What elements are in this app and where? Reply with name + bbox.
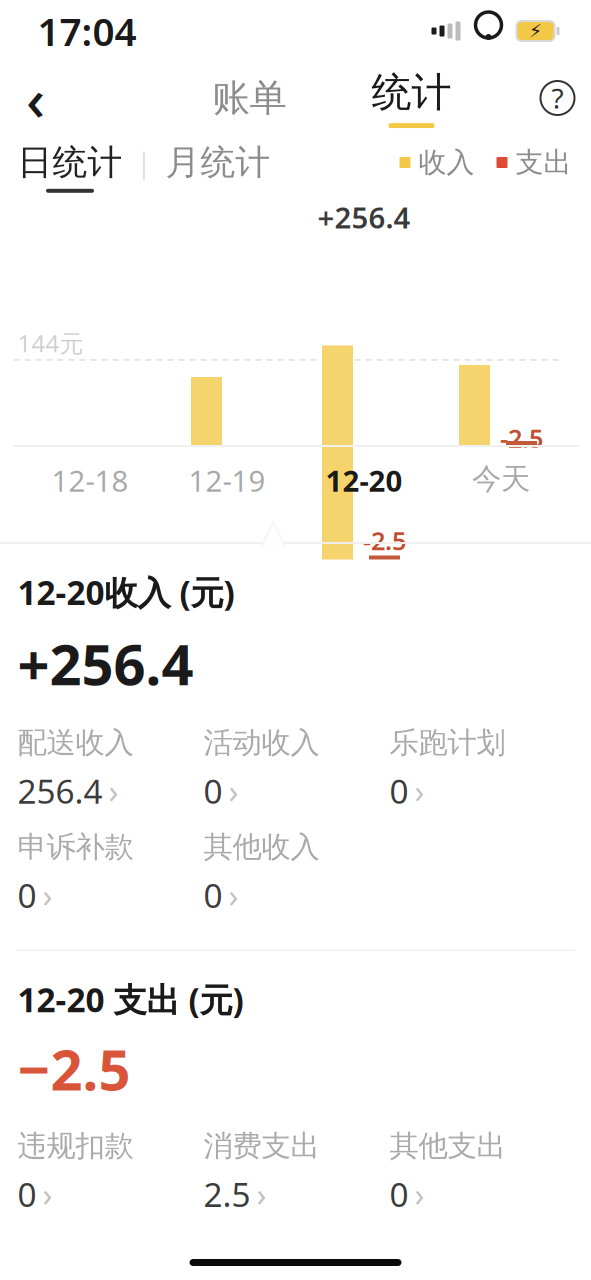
staticText: › [42,1173,52,1215]
staticText: › [108,769,118,812]
staticText: +256.4 [317,197,410,236]
button[interactable]: 其他收入 [203,829,389,917]
button[interactable]: 活动收入 [203,725,389,813]
button[interactable]: 月统计 [165,141,270,193]
staticText: | [136,145,151,180]
staticText: › [414,1173,424,1215]
staticText: › [228,769,238,812]
staticText: +256.4 [17,626,193,701]
button[interactable]: 统计 [356,66,466,130]
button[interactable]: Back [5,68,65,128]
staticText: 收入 [418,145,474,180]
button[interactable]: 日统计 [17,141,122,193]
button[interactable]: 违规扣款 [17,1128,203,1216]
staticText: 日统计 [17,141,122,184]
staticText: 12-20收入 (元) [17,570,234,614]
staticText: 2.5 [203,1172,250,1216]
button[interactable]: 其他支出 [389,1128,575,1216]
staticText: 0 [17,873,36,917]
staticText: 乐跑计划 [389,725,505,761]
staticText: 消费支出 [203,1128,319,1164]
staticText: 月统计 [165,141,270,184]
staticText: 12-19 [188,461,265,500]
staticText: −2.5 [17,1031,130,1106]
button[interactable]: 乐跑计划 [389,725,575,813]
staticText: › [414,769,424,812]
staticText: ‹ [26,59,45,137]
staticText: 256.4 [17,769,102,813]
staticText: 活动收入 [203,725,319,761]
button[interactable]: 申诉补款 [17,829,203,917]
staticText: 0 [17,1172,36,1216]
staticText: 12-20 [325,461,402,500]
staticText: -2.5 [500,421,543,455]
staticText: 支出 [515,145,571,180]
button[interactable]: Help [529,70,585,126]
button[interactable]: 消费支出 [203,1128,389,1216]
staticText: › [256,1173,266,1215]
staticText: › [228,874,238,916]
staticText: 17:04 [37,5,136,57]
button[interactable]: 账单 [194,68,304,128]
staticText: 0 [203,769,222,813]
staticText: 12-18 [51,461,128,500]
staticText: ⚡︎ [529,20,542,42]
staticText: -2.5 [363,524,406,557]
staticText: 配送收入 [17,725,133,761]
staticText: 其他支出 [389,1128,505,1164]
staticText: 144元 [17,327,83,359]
staticText: 统计 [371,68,451,117]
staticText: 今天 [472,461,530,497]
staticText: 违规扣款 [17,1128,133,1164]
staticText: 12-20 支出 (元) [17,977,243,1021]
staticText: › [42,874,52,916]
staticText: 0 [389,769,408,813]
staticText: 申诉补款 [17,829,133,865]
staticText: 0 [389,1172,408,1216]
button[interactable]: 配送收入 [17,725,203,813]
staticText: 账单 [212,75,286,121]
staticText: ? [551,79,563,117]
staticText: 其他收入 [203,829,319,865]
staticText: 0 [203,873,222,917]
